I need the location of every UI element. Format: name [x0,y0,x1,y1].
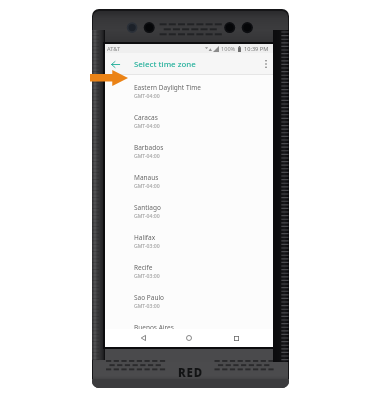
staticText: GMT-03:00 [134,303,160,310]
staticText: Manaus [134,173,159,182]
button[interactable]: Back [134,329,152,347]
staticText: Recife [134,263,153,272]
staticText: 10:39 PM [244,45,269,53]
button[interactable]: Halifax [105,225,273,255]
staticText: Caracas [134,113,158,122]
staticText: GMT-03:00 [134,273,160,280]
staticText: GMT-03:00 [134,333,160,340]
staticText: GMT-04:00 [134,93,160,100]
button[interactable]: Barbados [105,135,273,165]
staticText: Barbados [134,143,164,152]
staticText: Eastern Daylight Time [134,83,201,92]
button[interactable]: Home [180,329,198,347]
staticText: Santiago [134,203,161,212]
staticText: Halifax [134,233,156,242]
staticText: GMT-04:00 [134,153,160,160]
button[interactable]: Manaus [105,165,273,195]
staticText: GMT-04:00 [134,213,160,220]
staticText: GMT-04:00 [134,123,160,130]
button[interactable]: Santiago [105,195,273,225]
button[interactable]: Caracas [105,105,273,135]
button[interactable]: More options [259,53,273,75]
staticText: GMT-03:00 [134,243,160,250]
staticText: RED [178,365,203,380]
button[interactable]: Recent apps [227,329,245,347]
staticText: Select time zone [134,59,196,70]
button[interactable]: Buenos Aires [105,315,273,345]
staticText: AT&T [107,45,121,53]
button[interactable]: Eastern Daylight Time [105,75,273,105]
button[interactable]: Recife [105,255,273,285]
staticText: Sao Paulo [134,293,165,302]
staticText: 100% [221,45,236,53]
button[interactable]: Sao Paulo [105,285,273,315]
staticText: GMT-04:00 [134,183,160,190]
staticText: Buenos Aires [134,323,174,332]
button[interactable]: Navigate up [105,53,126,75]
